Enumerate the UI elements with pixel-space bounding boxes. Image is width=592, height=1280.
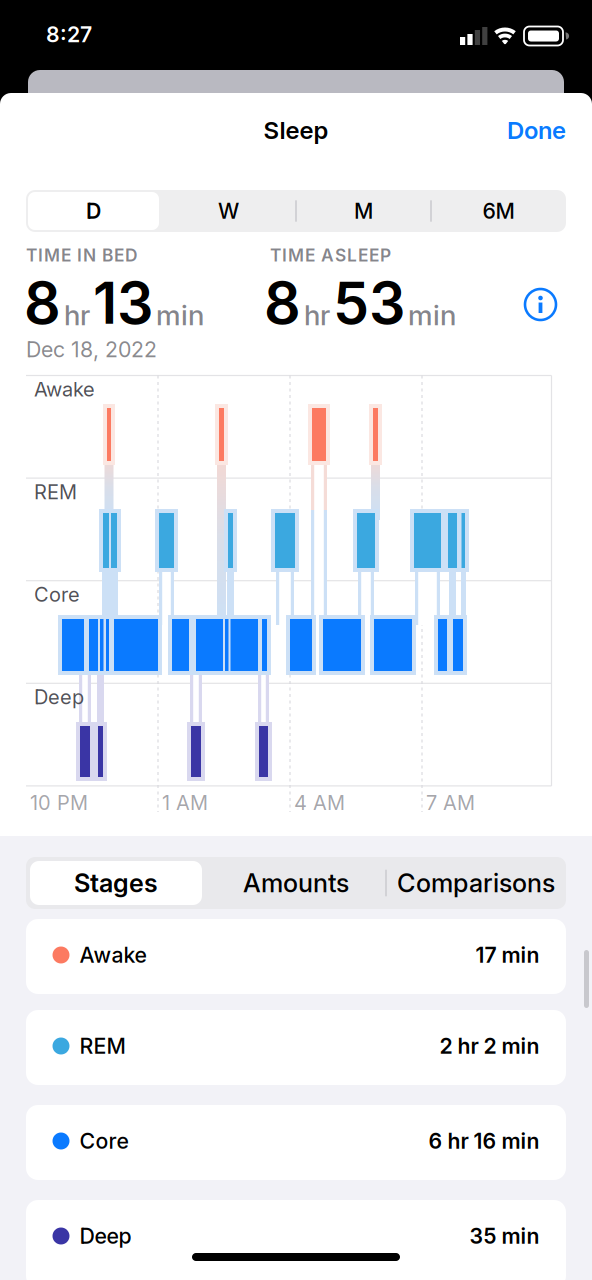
staticText: REM (34, 480, 77, 504)
staticText: 35 min (469, 1223, 539, 1249)
staticText: Comparisons (397, 868, 555, 898)
button[interactable]: Deep (26, 1200, 566, 1280)
staticText: 8 (24, 269, 61, 337)
staticText: 6M (482, 198, 514, 224)
staticText: D (86, 198, 101, 224)
staticText: Core (79, 1128, 128, 1154)
staticText: REM (79, 1033, 125, 1059)
staticText: Sleep (263, 116, 328, 144)
staticText: T I M E A S L E E P (270, 245, 391, 265)
staticText: Done (507, 116, 566, 144)
staticText: Deep (79, 1223, 131, 1249)
staticText: Awake (79, 942, 146, 968)
staticText: M (354, 198, 373, 224)
staticText: 53 (333, 269, 405, 337)
staticText: 6 hr 16 min (428, 1128, 539, 1154)
staticText: min (156, 299, 204, 332)
button[interactable]: W (161, 190, 296, 232)
staticText: 8 (264, 269, 301, 337)
staticText: Core (34, 583, 80, 606)
button[interactable]: Amounts (206, 857, 386, 909)
button[interactable]: REM (26, 1010, 566, 1085)
staticText: min (408, 299, 456, 332)
staticText: Amounts (243, 868, 349, 898)
button[interactable]: Awake (26, 919, 566, 994)
staticText: 17 min (475, 942, 539, 968)
staticText: 2 hr 2 min (439, 1033, 539, 1059)
staticText: 4 AM (294, 791, 345, 815)
staticText: 10 PM (30, 791, 88, 815)
staticText: hr (64, 299, 90, 332)
staticText: 1 AM (162, 791, 208, 815)
staticText: Awake (34, 377, 95, 401)
staticText: W (218, 198, 239, 224)
staticText: hr (304, 299, 330, 332)
staticText: 8:27 (46, 22, 92, 47)
staticText: T I M E I N B E D (26, 245, 138, 265)
button[interactable]: D (26, 190, 161, 232)
button[interactable]: Core (26, 1105, 566, 1180)
staticText: Dec 18, 2022 (26, 337, 157, 362)
button[interactable]: Info (525, 289, 556, 320)
button[interactable]: Done (507, 116, 566, 144)
button[interactable]: Stages (26, 857, 206, 909)
button[interactable]: 6M (431, 190, 566, 232)
staticText: 13 (93, 269, 153, 337)
staticText: 7 AM (426, 791, 475, 815)
staticText: Stages (74, 868, 158, 898)
button[interactable]: Comparisons (386, 857, 566, 909)
staticText: Deep (34, 685, 84, 709)
button[interactable]: M (296, 190, 431, 232)
